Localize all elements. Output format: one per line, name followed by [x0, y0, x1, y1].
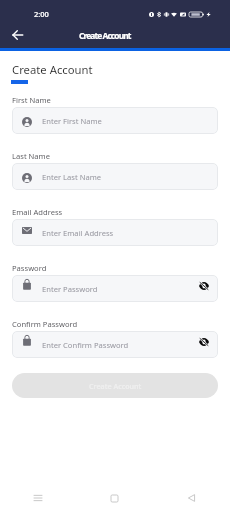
staticText: Create Account — [89, 381, 142, 391]
staticText: Enter Password — [42, 284, 98, 294]
button[interactable]: Create Account — [12, 373, 218, 398]
button[interactable]: Show password — [197, 338, 211, 352]
button[interactable]: Enter Last Name — [12, 163, 218, 190]
staticText: First Name — [12, 95, 51, 105]
button[interactable]: Back — [153, 484, 230, 512]
button[interactable]: Enter First Name — [12, 107, 218, 134]
staticText: 2:00 — [34, 9, 49, 19]
button[interactable]: Show password — [197, 282, 211, 296]
staticText: Create Account — [12, 62, 93, 77]
button[interactable]: Home — [76, 484, 153, 512]
staticText: Enter Last Name — [42, 172, 102, 182]
staticText: Enter Email Address — [42, 228, 114, 238]
staticText: Enter First Name — [42, 116, 102, 126]
staticText: Email Address — [12, 207, 63, 217]
staticText: Enter Confirm Password — [42, 340, 129, 350]
staticText: Password — [12, 263, 47, 273]
staticText: Last Name — [12, 151, 51, 161]
button[interactable]: Enter Password — [12, 275, 218, 302]
button[interactable]: Enter Email Address — [12, 219, 218, 246]
button[interactable]: Back — [8, 25, 28, 45]
button[interactable]: Recent apps — [0, 484, 76, 512]
staticText: Create Account — [79, 30, 131, 41]
staticText: Confirm Password — [12, 319, 78, 329]
button[interactable]: Enter Confirm Password — [12, 331, 218, 358]
